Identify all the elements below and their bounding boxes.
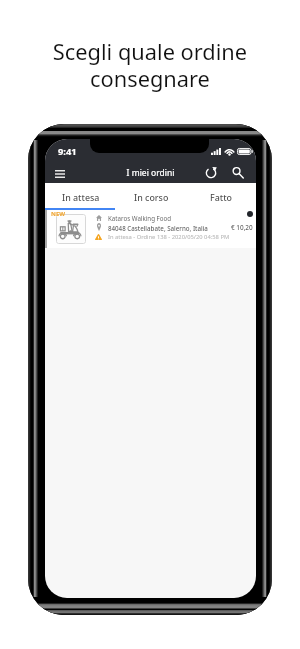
button[interactable]: Fatto <box>186 183 256 210</box>
staticText: In corso <box>134 191 169 203</box>
staticText: 9:41 <box>58 145 77 158</box>
button[interactable]: In attesa <box>45 183 116 210</box>
staticText: 84048 Castellabate, Salerno, Italia <box>108 224 208 232</box>
staticText: Fatto <box>210 191 233 203</box>
staticText: Scegli quale ordine consegnare <box>0 37 300 94</box>
staticText: Kataros Walking Food <box>108 214 172 222</box>
staticText: NEW <box>51 210 66 218</box>
staticText: In attesa <box>62 191 100 203</box>
button[interactable]: In corso <box>116 183 186 210</box>
staticText: € 10,20 <box>231 223 253 232</box>
button[interactable]: Menu <box>51 165 69 183</box>
staticText: I miei ordini <box>45 167 256 179</box>
button[interactable]: Kataros Walking Food <box>45 210 256 248</box>
staticText: In attesa - Ordine 138 - 2020/05/20 04:5… <box>108 233 230 241</box>
button[interactable]: Search <box>228 163 247 182</box>
button[interactable]: Refresh <box>201 163 220 182</box>
